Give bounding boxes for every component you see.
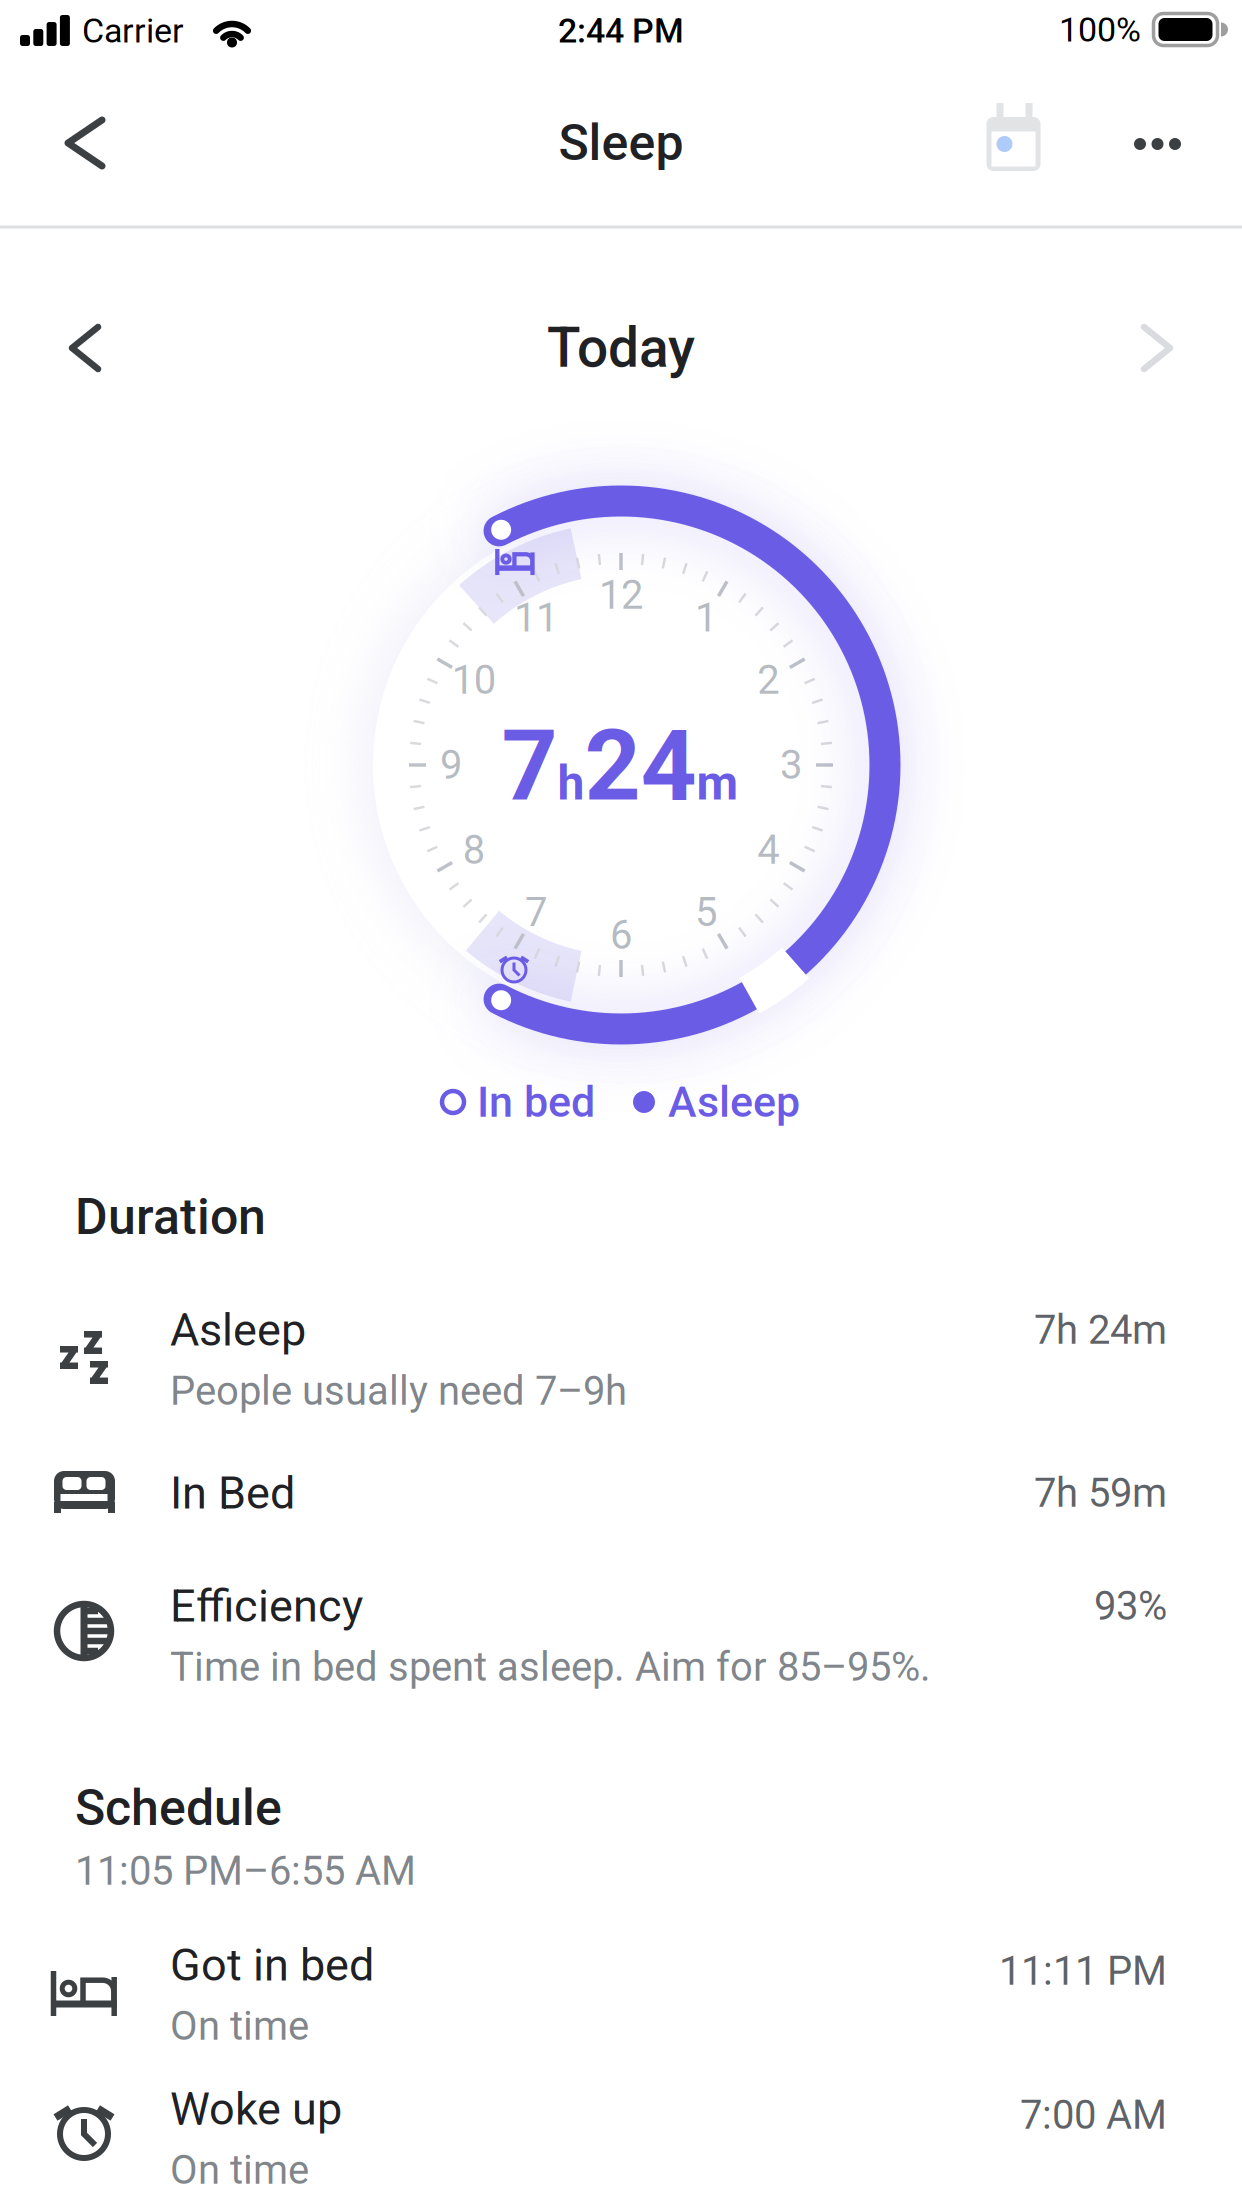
staticText: 100% xyxy=(1059,10,1141,50)
button[interactable]: Calendar xyxy=(963,94,1063,194)
staticText: People usually need 7–9h xyxy=(170,1368,627,1414)
staticText: 7h 59m xyxy=(1034,1470,1167,1516)
staticText: Got in bed xyxy=(170,1939,374,1991)
staticText: Efficiency xyxy=(170,1580,363,1632)
staticText: 6 xyxy=(610,912,632,958)
staticText: 7 xyxy=(525,889,547,936)
staticText: Schedule xyxy=(75,1779,282,1837)
staticText: Today xyxy=(547,316,695,380)
staticText: Carrier xyxy=(82,11,184,51)
staticText: On time xyxy=(170,2003,309,2049)
staticText: 11:11 PM xyxy=(999,1948,1167,1994)
staticText: 2 xyxy=(757,657,779,703)
staticText: 4 xyxy=(757,827,779,873)
staticText: Duration xyxy=(75,1188,266,1246)
staticText: On time xyxy=(170,2147,309,2193)
staticText: 2:44 PM xyxy=(558,11,684,51)
button[interactable]: Back xyxy=(40,98,130,188)
staticText: Time in bed spent asleep. Aim for 85–95%… xyxy=(170,1644,931,1690)
staticText: Sleep xyxy=(558,114,683,172)
staticText: 3 xyxy=(780,742,802,788)
staticText: 8 xyxy=(463,827,485,873)
staticText: 11 xyxy=(514,594,558,641)
button[interactable]: Previous day xyxy=(40,303,130,393)
staticText: 12 xyxy=(599,572,643,618)
staticText: 7h 24m xyxy=(1034,1307,1167,1353)
staticText: In Bed xyxy=(170,1467,295,1519)
staticText: Woke up xyxy=(170,2083,342,2135)
staticText: 7h24m xyxy=(501,710,738,822)
staticText: 7:00 AM xyxy=(1020,2092,1167,2138)
staticText: 1 xyxy=(695,594,717,641)
staticText: 9 xyxy=(440,742,462,788)
staticText: 10 xyxy=(452,657,496,703)
button[interactable]: More options xyxy=(1107,94,1207,194)
button[interactable]: Next day xyxy=(1112,303,1202,393)
staticText: 5 xyxy=(695,889,717,936)
staticText: Asleep xyxy=(668,1077,800,1127)
staticText: In bed xyxy=(477,1077,595,1127)
staticText: Asleep xyxy=(170,1304,306,1356)
staticText: 93% xyxy=(1094,1583,1167,1629)
staticText: 11:05 PM–6:55 AM xyxy=(75,1848,416,1894)
